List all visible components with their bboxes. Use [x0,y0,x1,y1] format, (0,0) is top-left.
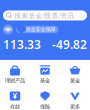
staticText: 保险 [40,103,50,110]
button[interactable]: ¥ [0,90,30,110]
button[interactable]: 更多 [60,90,90,110]
button[interactable]: 资金安全保障 [16,26,58,33]
staticText: 更多 [70,103,80,110]
staticText: 资金安全保障 [25,26,55,33]
staticText: ¥ [12,91,17,101]
staticText: 113.33 [3,36,41,52]
staticText: 基金 [40,77,50,84]
button[interactable]: 保险 [30,90,60,110]
staticText: 搜索基金/股票/资讯 [14,11,74,20]
staticText: 黄金 [70,77,80,84]
staticText: 存款 [10,103,20,110]
staticText: 理财产品 [5,77,25,84]
button[interactable]: 理财产品 [0,64,30,84]
button[interactable]: Toggle balance visibility [3,24,13,34]
button[interactable]: 黄金 [60,64,90,84]
staticText: -49.82 [52,36,87,52]
button[interactable]: 搜索基金/股票/资讯 [3,10,87,20]
button[interactable]: 基金 [30,64,60,84]
